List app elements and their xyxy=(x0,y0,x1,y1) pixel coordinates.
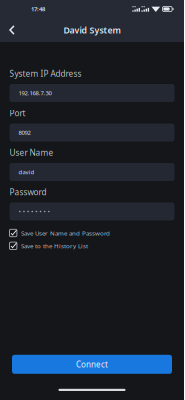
staticText: User Name xyxy=(9,147,53,158)
staticText: Connect xyxy=(76,359,108,370)
staticText: David System xyxy=(63,24,120,36)
staticText: 192.168.7.30 xyxy=(18,89,51,97)
button[interactable] xyxy=(9,202,174,220)
button[interactable]: david xyxy=(9,163,174,181)
staticText: 8092 xyxy=(18,128,30,136)
button[interactable]: Connect xyxy=(9,355,174,374)
staticText: Save to the History List xyxy=(21,242,88,250)
staticText: System IP Address xyxy=(9,68,81,79)
staticText: Port xyxy=(9,107,25,119)
button[interactable]: Back xyxy=(0,18,24,42)
button[interactable]: 192.168.7.30 xyxy=(9,84,174,102)
button[interactable]: 8092 xyxy=(9,123,174,141)
button[interactable]: Save User Name and Password xyxy=(9,227,174,238)
staticText: david xyxy=(18,168,34,176)
staticText: Password xyxy=(9,186,46,198)
button[interactable]: Save to the History List xyxy=(9,240,174,251)
staticText: Save User Name and Password xyxy=(21,229,110,237)
staticText: 17:48 xyxy=(31,5,45,13)
